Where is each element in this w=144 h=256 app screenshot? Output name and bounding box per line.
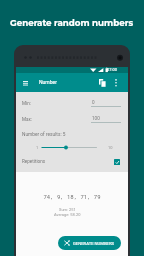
staticText: 74, 9, 18, 71, 79 [16, 193, 128, 200]
staticText: 07:00 [107, 67, 117, 72]
staticText: Average: 58.20 [54, 212, 81, 217]
button[interactable]: Number of results slider [40, 142, 98, 153]
button[interactable]: Open navigation drawer [19, 77, 32, 88]
staticText: 100 [92, 116, 100, 121]
staticText: Repetitions [22, 159, 46, 164]
staticText: 0 [92, 100, 95, 105]
staticText: Min: [22, 101, 31, 106]
staticText: 10 [108, 145, 113, 150]
button[interactable]: Repetitions [16, 155, 128, 169]
staticText: Max: [22, 117, 32, 122]
staticText: Number [39, 79, 57, 85]
button[interactable]: GENERATE NUMBERS [58, 236, 121, 250]
staticText: Generate random numbers [10, 18, 134, 29]
button[interactable]: More options [110, 77, 121, 88]
staticText: Sum: 251 [59, 207, 76, 212]
button[interactable]: Copy results [96, 77, 108, 88]
staticText: 1 [36, 145, 39, 150]
staticText: Number of results: 5 [22, 132, 66, 138]
staticText: GENERATE NUMBERS [73, 241, 114, 246]
